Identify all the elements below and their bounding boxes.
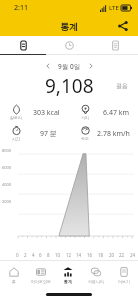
staticText: 2.78 km/h bbox=[97, 129, 130, 139]
staticText: 10 bbox=[55, 252, 61, 258]
staticText: 커뮤니티 bbox=[88, 279, 104, 284]
button[interactable]: Share bbox=[116, 19, 130, 33]
button[interactable]: 커뮤니티 bbox=[82, 261, 110, 289]
button[interactable]: 홈 bbox=[0, 261, 27, 289]
staticText: 2000 bbox=[2, 199, 12, 204]
button[interactable]: 통계 bbox=[54, 261, 82, 289]
staticText: 6 bbox=[39, 252, 42, 258]
staticText: 2:11 bbox=[14, 3, 28, 13]
staticText: 통계 bbox=[64, 279, 72, 284]
staticText: 14 bbox=[76, 252, 82, 258]
button[interactable]: 마이포인트 bbox=[27, 261, 54, 289]
staticText: 8000 bbox=[2, 148, 12, 153]
button[interactable]: 더보기 bbox=[110, 261, 138, 289]
button[interactable]: 속도 bbox=[69, 126, 138, 141]
button[interactable]: Steps tab bbox=[0, 36, 46, 54]
button[interactable]: 칼로리 bbox=[0, 105, 69, 120]
staticText: 9,108 bbox=[45, 73, 94, 99]
staticText: 6000 bbox=[2, 165, 12, 170]
staticText: 0 bbox=[16, 252, 19, 258]
button[interactable]: Next day bbox=[86, 61, 96, 71]
staticText: 16 bbox=[87, 252, 93, 258]
button[interactable]: Previous day bbox=[43, 61, 53, 71]
staticText: 거리 bbox=[81, 115, 89, 120]
staticText: 홈 bbox=[12, 279, 16, 284]
staticText: 4 bbox=[32, 252, 35, 258]
staticText: LTE bbox=[109, 4, 119, 12]
staticText: 20 bbox=[109, 252, 115, 258]
staticText: 시간 bbox=[12, 136, 20, 141]
staticText: 칼로리 bbox=[10, 115, 22, 120]
staticText: 18 bbox=[98, 252, 104, 258]
staticText: 24 bbox=[130, 252, 136, 258]
staticText: 4000 bbox=[2, 182, 12, 187]
button[interactable]: 시간 bbox=[0, 126, 69, 141]
staticText: 2 bbox=[24, 252, 27, 258]
staticText: 걸음 bbox=[116, 82, 128, 90]
button[interactable]: 거리 bbox=[69, 105, 138, 120]
staticText: 22 bbox=[119, 252, 125, 258]
staticText: 마이포인트 bbox=[31, 279, 51, 284]
staticText: 303 kcal bbox=[33, 108, 60, 118]
staticText: 더보기 bbox=[118, 279, 130, 284]
staticText: 8 bbox=[47, 252, 50, 258]
staticText: 12 bbox=[66, 252, 72, 258]
button[interactable]: Report tab bbox=[92, 36, 138, 54]
staticText: 통계 bbox=[60, 21, 78, 32]
staticText: 9월 0일 bbox=[58, 62, 81, 71]
staticText: 6.47 km bbox=[103, 108, 129, 118]
staticText: 속도 bbox=[81, 136, 89, 141]
button[interactable]: Activity tab bbox=[46, 36, 92, 54]
staticText: 97 분 bbox=[40, 129, 57, 139]
